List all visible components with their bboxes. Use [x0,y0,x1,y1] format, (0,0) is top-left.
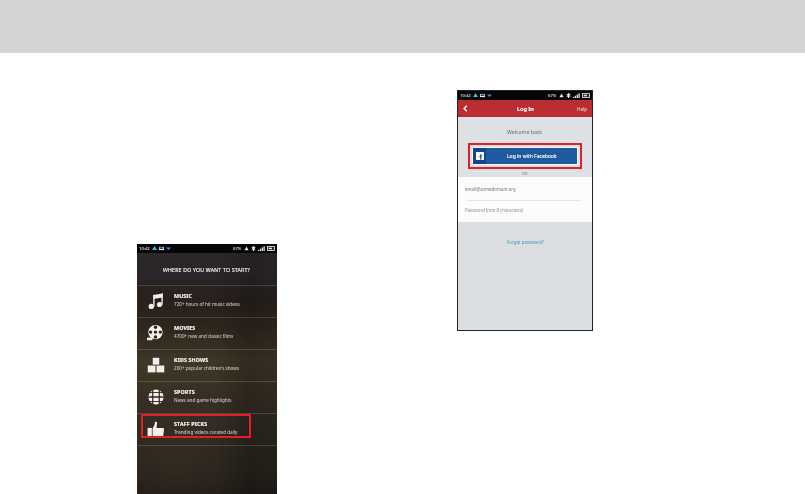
staticText: OR [522,171,528,176]
staticText: 200+ popular children's shows [174,365,240,371]
staticText: STAFF PICKS [174,420,208,427]
staticText: MOVIES [174,324,196,331]
staticText: 720+ hours of hit music videos [174,301,240,307]
staticText: 67% [548,93,557,99]
staticText: Help [577,106,588,112]
staticText: 67% [233,246,242,252]
button[interactable]: Help [573,102,592,116]
button[interactable]: SPORTS [137,382,277,413]
button[interactable]: KIDS SHOWS [137,350,277,381]
staticText: Log In [517,105,534,113]
staticText: Log in with Facebook [507,153,557,160]
button[interactable]: MOVIES [137,318,277,349]
staticText: email@somedomain.org [465,186,516,192]
staticText: Password (min 8 characters) [465,207,523,213]
staticText: MUSIC [174,292,193,299]
button[interactable]: Password (min 8 characters) [465,207,523,213]
button[interactable]: MUSIC [137,286,277,317]
staticText: Trending videos curated daily [174,429,238,435]
staticText: KIDS SHOWS [174,356,209,363]
button[interactable]: email@somedomain.org [465,186,516,192]
button[interactable]: Back [458,100,473,117]
button[interactable]: Log in with Facebook [473,148,577,164]
staticText: 10:42 [460,93,471,99]
staticText: Forgot password? [507,239,544,245]
button[interactable]: Forgot password? [505,237,546,247]
staticText: WHERE DO YOU WANT TO START? [163,266,251,273]
staticText: News and game highlights [174,397,232,403]
button[interactable]: STAFF PICKS [137,414,277,445]
staticText: 4700+ new and classic films [174,333,234,339]
staticText: SPORTS [174,388,195,395]
staticText: Welcome back [507,128,543,135]
staticText: 10:42 [139,246,150,252]
